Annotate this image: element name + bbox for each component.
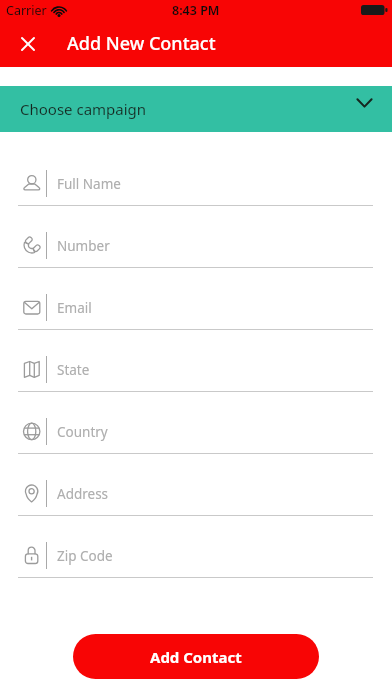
- staticText: Country: [57, 423, 108, 441]
- button[interactable]: [13, 29, 43, 59]
- staticText: Carrier: [6, 2, 47, 19]
- staticText: Full Name: [57, 175, 121, 193]
- button[interactable]: Number: [0, 206, 392, 268]
- staticText: Number: [57, 237, 110, 255]
- button[interactable]: Email: [0, 268, 392, 330]
- button[interactable]: Zip Code: [0, 516, 392, 578]
- button[interactable]: Country: [0, 392, 392, 454]
- staticText: Add New Contact: [67, 31, 216, 56]
- staticText: Email: [57, 299, 92, 317]
- staticText: Address: [57, 485, 109, 503]
- staticText: State: [57, 361, 90, 379]
- staticText: Add Contact: [150, 647, 242, 667]
- button[interactable]: State: [0, 330, 392, 392]
- staticText: Choose campaign: [20, 99, 147, 119]
- staticText: 8:43 PM: [172, 2, 220, 19]
- staticText: Zip Code: [57, 547, 113, 565]
- button[interactable]: Address: [0, 454, 392, 516]
- button[interactable]: Full Name: [0, 144, 392, 206]
- button[interactable]: Add Contact: [73, 634, 319, 679]
- button[interactable]: Choose campaign: [0, 86, 392, 132]
